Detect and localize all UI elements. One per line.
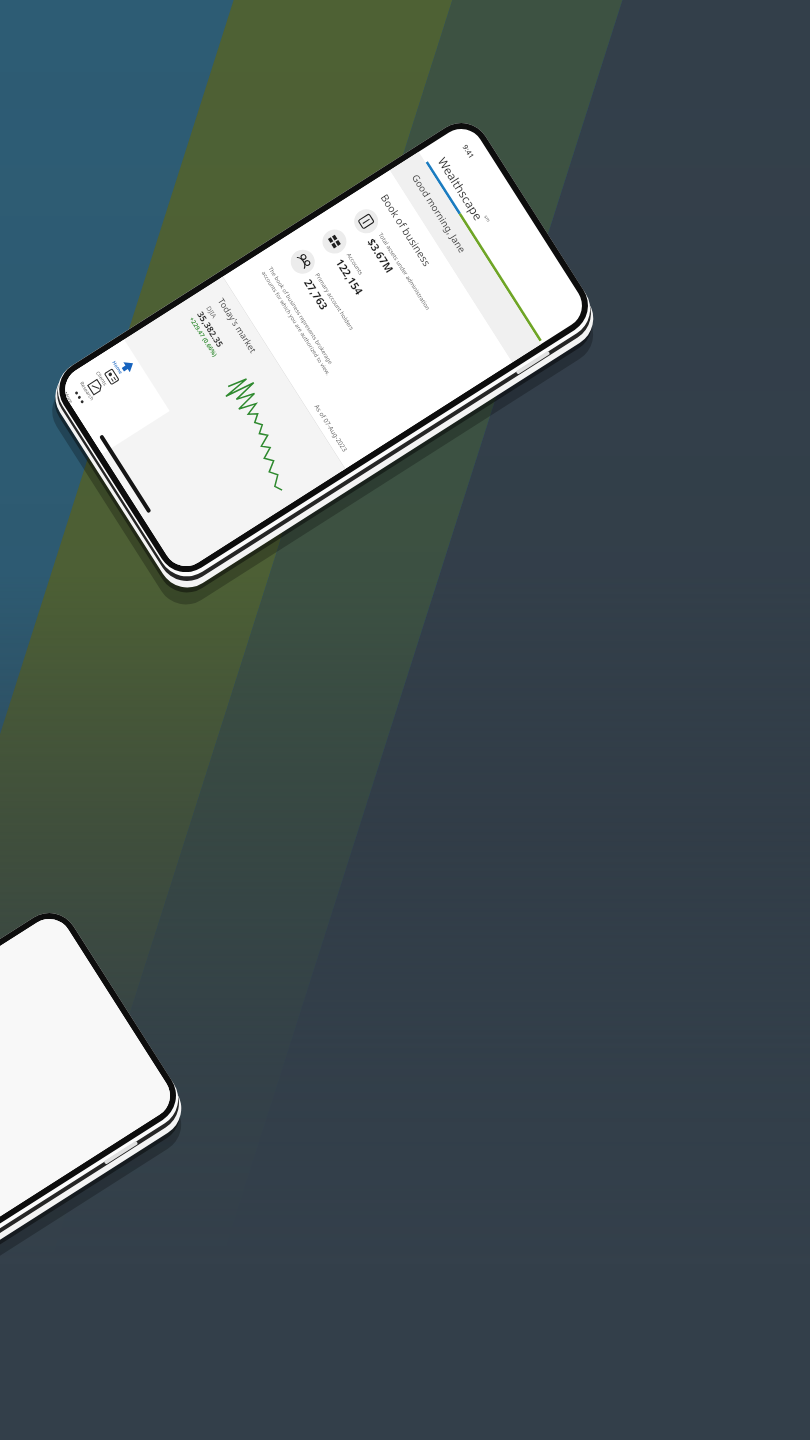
button[interactable]: More bbox=[213, 697, 280, 771]
button[interactable]: Research bbox=[189, 659, 256, 733]
button[interactable]: Home bbox=[143, 583, 210, 657]
button[interactable]: Wealthscape bbox=[471, 93, 587, 247]
button[interactable]: Accounts 122,154 bbox=[338, 273, 468, 441]
button[interactable]: Total assets under administration $3.67M bbox=[372, 225, 502, 393]
button[interactable]: Today's market DJIA bbox=[213, 467, 363, 653]
button[interactable]: Primary account holders 27,763 bbox=[308, 321, 438, 489]
button[interactable]: Book of business card bbox=[421, 170, 563, 362]
